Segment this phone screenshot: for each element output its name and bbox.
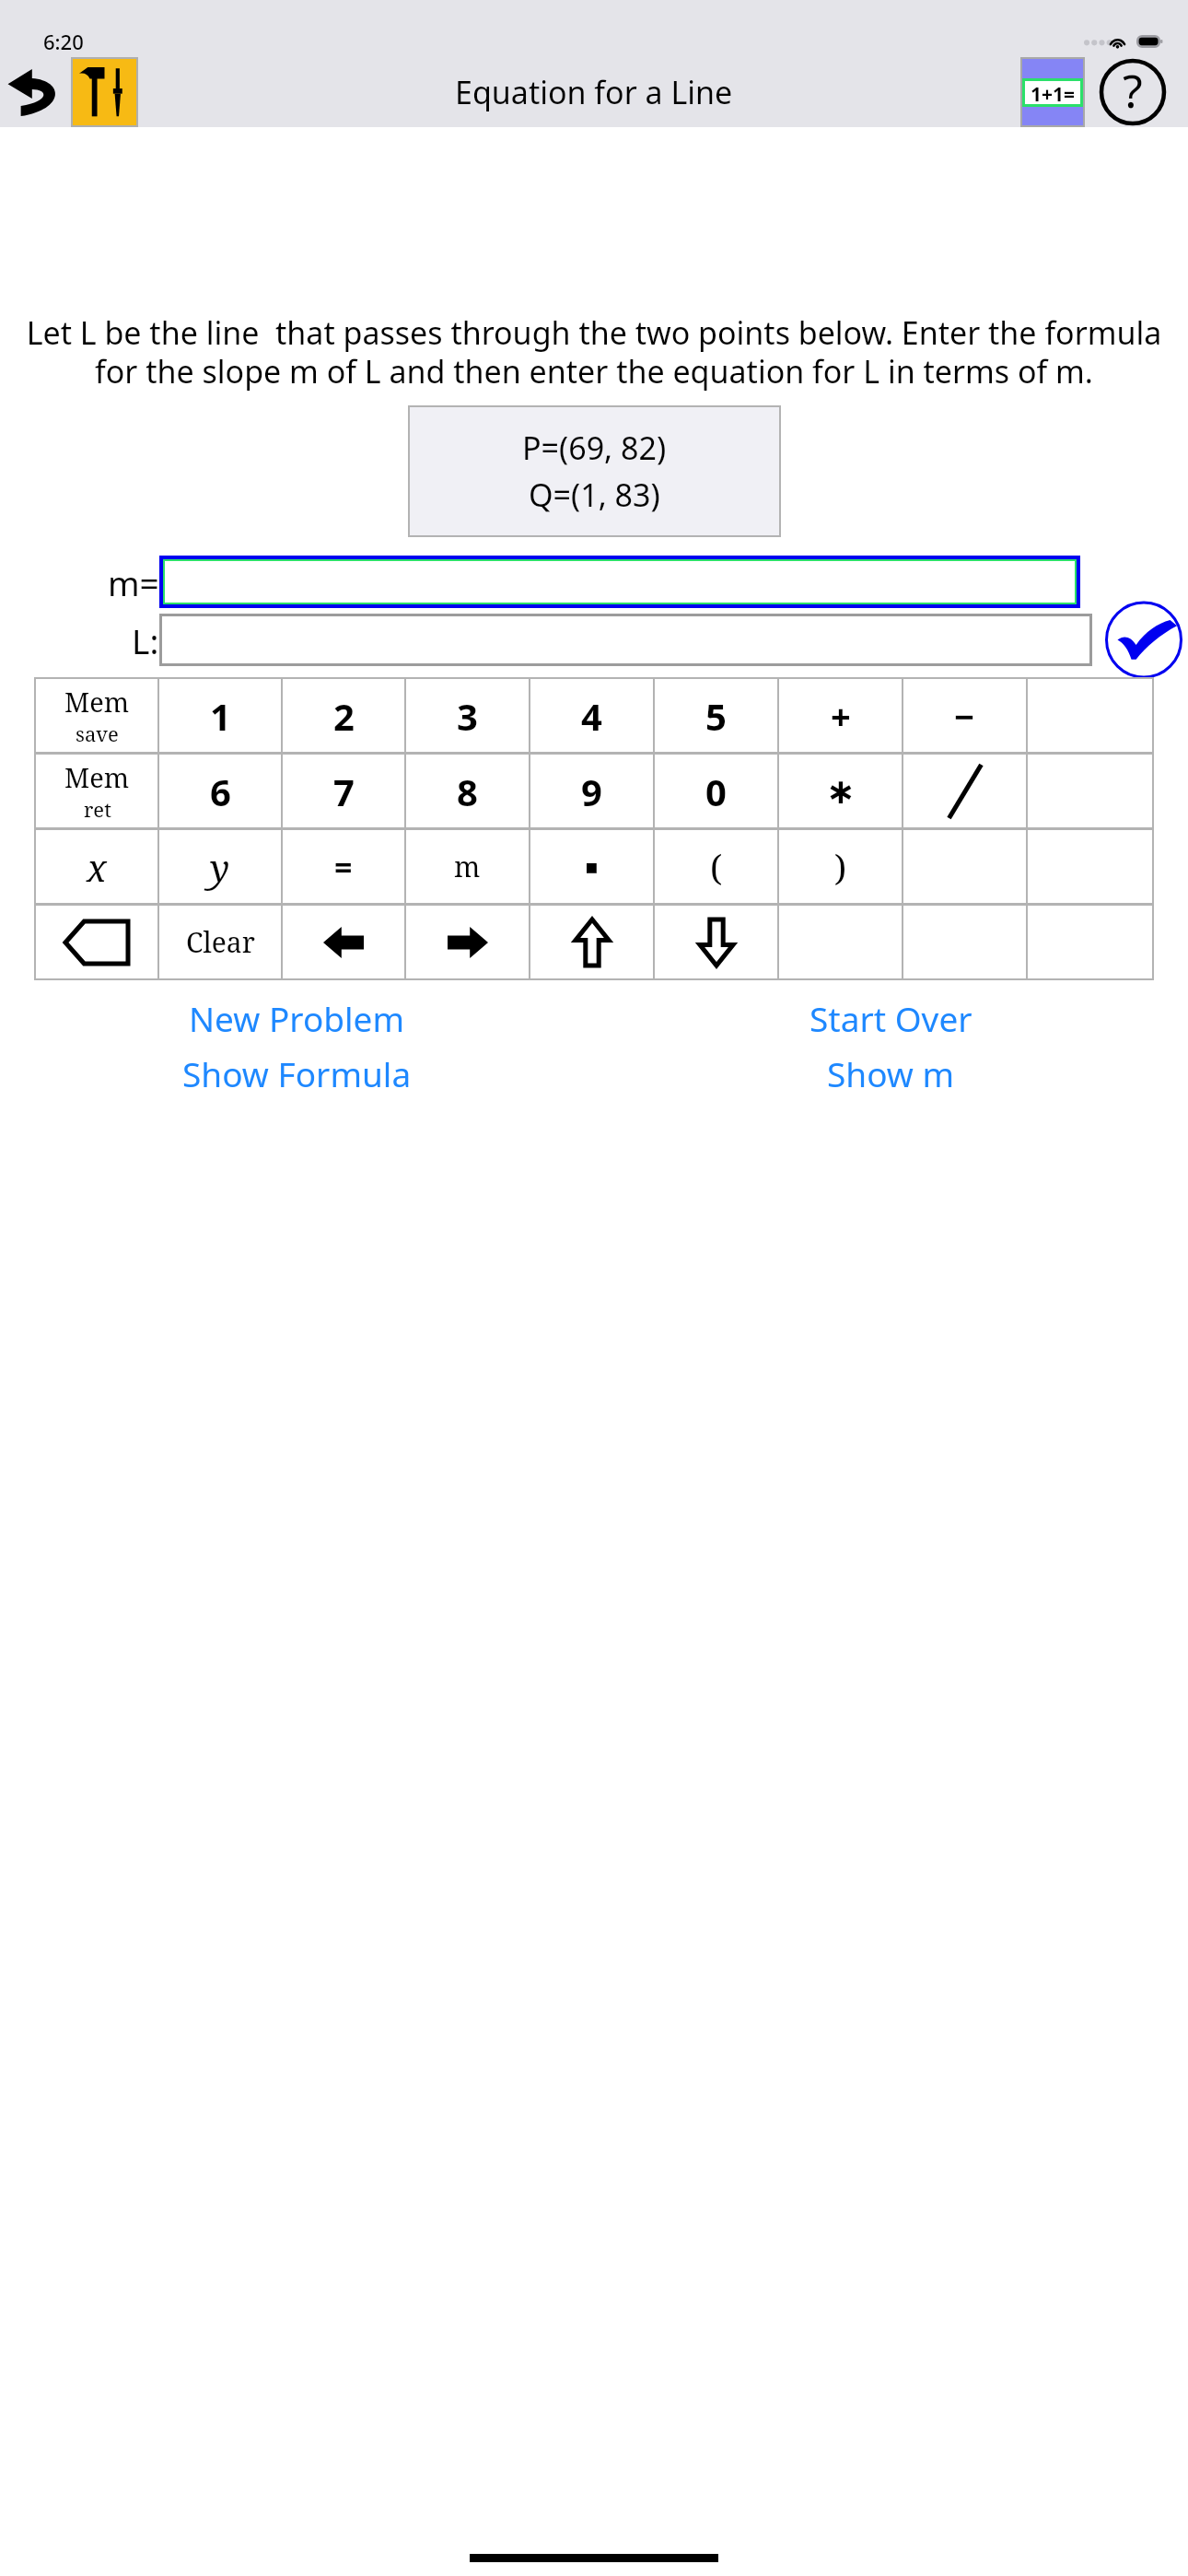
button[interactable]: Start Over (594, 995, 1188, 1041)
staticText: save (76, 720, 119, 747)
staticText: Show m (827, 1050, 955, 1096)
staticText: Q=(1, 83) (529, 474, 660, 516)
button[interactable] (779, 906, 902, 978)
button[interactable] (903, 755, 1026, 827)
staticText: Let L be the line that passes through th… (9, 311, 1179, 392)
button[interactable] (1028, 679, 1152, 752)
staticText: Start Over (809, 995, 973, 1041)
staticText: 1+1= (1031, 81, 1076, 104)
button[interactable] (903, 906, 1026, 978)
staticText: 4 (581, 691, 602, 741)
button[interactable]: New Problem (0, 995, 594, 1041)
staticText: 3 (457, 691, 478, 741)
button[interactable]: 4 (530, 679, 653, 752)
staticText: New Problem (189, 995, 405, 1041)
staticText: Mem (64, 684, 130, 720)
button[interactable]: Check answer (1100, 614, 1188, 666)
button[interactable]: y (159, 830, 281, 903)
staticText: Equation for a Line (455, 71, 733, 113)
button[interactable]: ) (779, 830, 902, 903)
staticText: 6:20 (43, 28, 84, 55)
staticText: Mem (64, 759, 130, 795)
button[interactable] (903, 830, 1026, 903)
button[interactable]: 1 (159, 679, 281, 752)
staticText: ) (834, 843, 847, 891)
button[interactable]: Calculator (1022, 59, 1083, 125)
staticText: ∗ (826, 771, 856, 812)
button[interactable]: 2 (283, 679, 404, 752)
staticText: ▪ (585, 855, 599, 879)
button[interactable]: Clear (159, 906, 281, 978)
button[interactable] (1028, 830, 1152, 903)
button[interactable]: 6 (159, 755, 281, 827)
staticText: y (210, 842, 230, 892)
button[interactable]: Help (1096, 57, 1170, 127)
button[interactable]: Show Formula (0, 1050, 594, 1096)
staticText: 8 (457, 767, 478, 816)
button[interactable]: Mem (36, 755, 157, 827)
button[interactable]: − (903, 679, 1026, 752)
staticText: 1 (210, 691, 231, 741)
button[interactable]: Back (6, 65, 64, 119)
staticText: m (454, 848, 481, 885)
button[interactable]: Down (655, 906, 777, 978)
staticText: = (334, 846, 353, 888)
staticText: 7 (333, 767, 355, 816)
button[interactable]: Show m (594, 1050, 1188, 1096)
button[interactable]: Mem (36, 679, 157, 752)
button[interactable]: m (406, 830, 529, 903)
staticText: L: (132, 617, 159, 663)
button[interactable]: = (283, 830, 404, 903)
button[interactable]: ∗ (779, 755, 902, 827)
staticText: x (87, 842, 107, 892)
button[interactable]: 8 (406, 755, 529, 827)
staticText: 2 (333, 691, 355, 741)
button[interactable]: Left (283, 906, 404, 978)
button[interactable]: ▪ (530, 830, 653, 903)
button[interactable]: 9 (530, 755, 653, 827)
staticText: 5 (705, 691, 727, 741)
button[interactable]: 3 (406, 679, 529, 752)
staticText: 9 (581, 767, 602, 816)
button[interactable]: + (779, 679, 902, 752)
button[interactable]: Delete (36, 906, 157, 978)
button[interactable]: 5 (655, 679, 777, 752)
button[interactable]: 0 (655, 755, 777, 827)
staticText: Show Formula (182, 1050, 412, 1096)
button[interactable]: Right (406, 906, 529, 978)
staticText: 0 (705, 767, 727, 816)
button[interactable]: x (36, 830, 157, 903)
button[interactable]: Up (530, 906, 653, 978)
staticText: + (831, 692, 851, 740)
button[interactable]: 7 (283, 755, 404, 827)
staticText: ? (1123, 59, 1143, 122)
button[interactable]: ( (655, 830, 777, 903)
button[interactable]: Slope input (165, 561, 1075, 603)
button[interactable]: Tools (73, 59, 136, 125)
staticText: ( (710, 843, 723, 891)
staticText: Clear (186, 923, 255, 961)
staticText: m= (108, 559, 159, 605)
staticText: 6 (210, 767, 231, 816)
button[interactable]: Equation input (162, 616, 1089, 663)
staticText: − (954, 692, 975, 740)
staticText: ret (84, 795, 111, 823)
staticText: P=(69, 82) (522, 427, 667, 469)
